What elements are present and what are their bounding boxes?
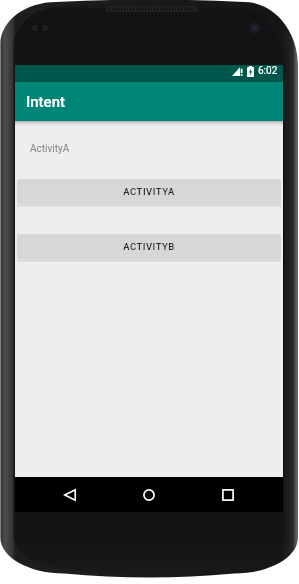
staticText: 6:02: [258, 65, 278, 77]
button[interactable]: Home: [125, 477, 173, 512]
staticText: ACTIVITYB: [123, 241, 175, 252]
staticText: ActivityA: [30, 143, 70, 155]
button[interactable]: Back: [46, 477, 94, 512]
button[interactable]: ACTIVITYA: [17, 179, 281, 204]
staticText: Intent: [26, 93, 65, 111]
button[interactable]: ACTIVITYB: [17, 234, 281, 259]
staticText: ACTIVITYA: [123, 186, 175, 197]
button[interactable]: Recents: [204, 477, 252, 512]
